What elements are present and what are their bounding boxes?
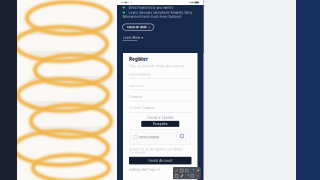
- button[interactable]: Ellipse: [190, 173, 194, 178]
- button[interactable]: Pen: [174, 168, 179, 173]
- staticText: Password: [129, 95, 142, 99]
- staticText: Username: [129, 84, 144, 88]
- button[interactable]: Arrow: [190, 168, 194, 173]
- staticText: REGISTER NOW: [127, 25, 147, 29]
- button[interactable]: Arrow: [185, 173, 189, 178]
- button[interactable]: Highlighter: [195, 168, 200, 173]
- staticText: I'm not a robot: [139, 135, 159, 139]
- button[interactable]: Create Account: [129, 157, 191, 164]
- staticText: Email Address: [129, 73, 150, 76]
- staticText: Sign up below to create your account: [129, 64, 184, 68]
- button[interactable]: Ellipse: [185, 168, 189, 173]
- staticText: Learn More ▾: [122, 35, 143, 40]
- staticText: Choose a Captcha: [147, 116, 174, 120]
- staticText: By signing up you agree to our Terms & C…: [129, 147, 182, 154]
- staticText: Create Account: [148, 158, 172, 163]
- button[interactable]: Rectangle: [179, 168, 184, 173]
- button[interactable]: Close: [195, 173, 200, 178]
- staticText: ›: [149, 24, 150, 30]
- staticText: Direct Payments to your wallet!: [122, 6, 173, 9]
- staticText: Existing User? Sign in: [129, 168, 160, 172]
- staticText: Confirm Password: [129, 106, 155, 110]
- staticText: Register: [129, 56, 148, 62]
- button[interactable]: Pen: [179, 173, 184, 178]
- staticText: reCAPTCHA: [177, 138, 186, 140]
- button[interactable]: Existing User? Sign in: [129, 168, 160, 172]
- button[interactable]: REGISTER NOW: [122, 24, 154, 30]
- button[interactable]: Learn More ▾: [122, 35, 143, 40]
- button[interactable]: Rectangle: [174, 173, 179, 178]
- button[interactable]: Recaptcha: [141, 121, 179, 127]
- staticText: Recaptcha: [153, 122, 168, 126]
- staticText: Levels, Bonuses, Daily Rank Rewards, Dai…: [122, 11, 191, 18]
